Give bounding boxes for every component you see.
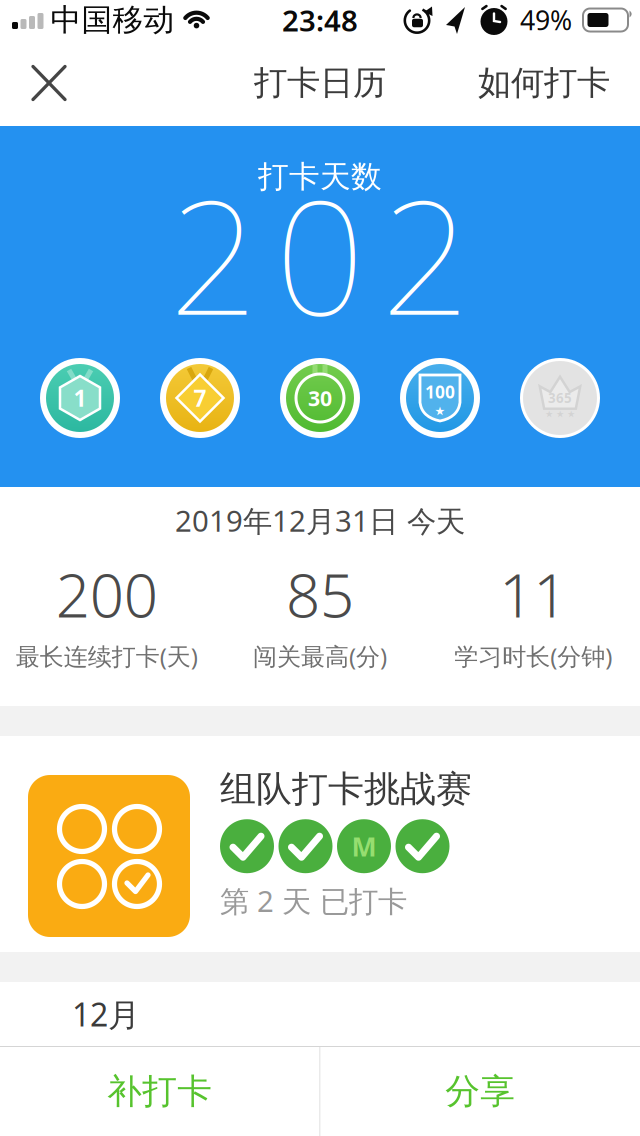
staticText: 365 [548,389,572,407]
staticText: 最长连续打卡(天) [16,640,198,672]
staticText: 组队打卡挑战赛 [220,767,472,811]
staticText: 第 2 天 已打卡 [220,881,407,920]
staticText: 1 [73,383,86,413]
staticText: 11 [499,554,567,634]
staticText: 如何打卡 [478,62,610,103]
button[interactable]: 组队打卡挑战赛 [0,736,640,952]
staticText: 202 [169,149,471,358]
staticText: 85 [286,554,354,634]
staticText: ★ ★ ★ [545,409,575,419]
staticText: 2019年12月31日 今天 [175,501,465,540]
staticText: 分享 [445,1070,515,1113]
staticText: 12月 [72,993,140,1035]
staticText: 打卡天数 [258,158,382,196]
staticText: 闯关最高(分) [253,640,387,672]
staticText: 23:48 [282,0,358,39]
button[interactable]: 如何打卡 [478,38,640,127]
staticText: ★ [434,404,445,418]
staticText: M [351,828,376,864]
staticText: 30 [308,384,332,412]
button[interactable]: 关闭 [0,42,65,123]
staticText: 49% [520,2,572,38]
staticText: 7 [193,383,206,413]
staticText: 200 [56,554,158,634]
staticText: 中国移动 [50,1,174,39]
button[interactable]: 分享 [320,1047,640,1136]
staticText: 学习时长(分钟) [454,640,612,672]
staticText: 100 [425,380,455,403]
button[interactable]: 补打卡 [0,1047,319,1136]
staticText: 打卡日历 [254,62,386,103]
staticText: 补打卡 [107,1070,212,1113]
